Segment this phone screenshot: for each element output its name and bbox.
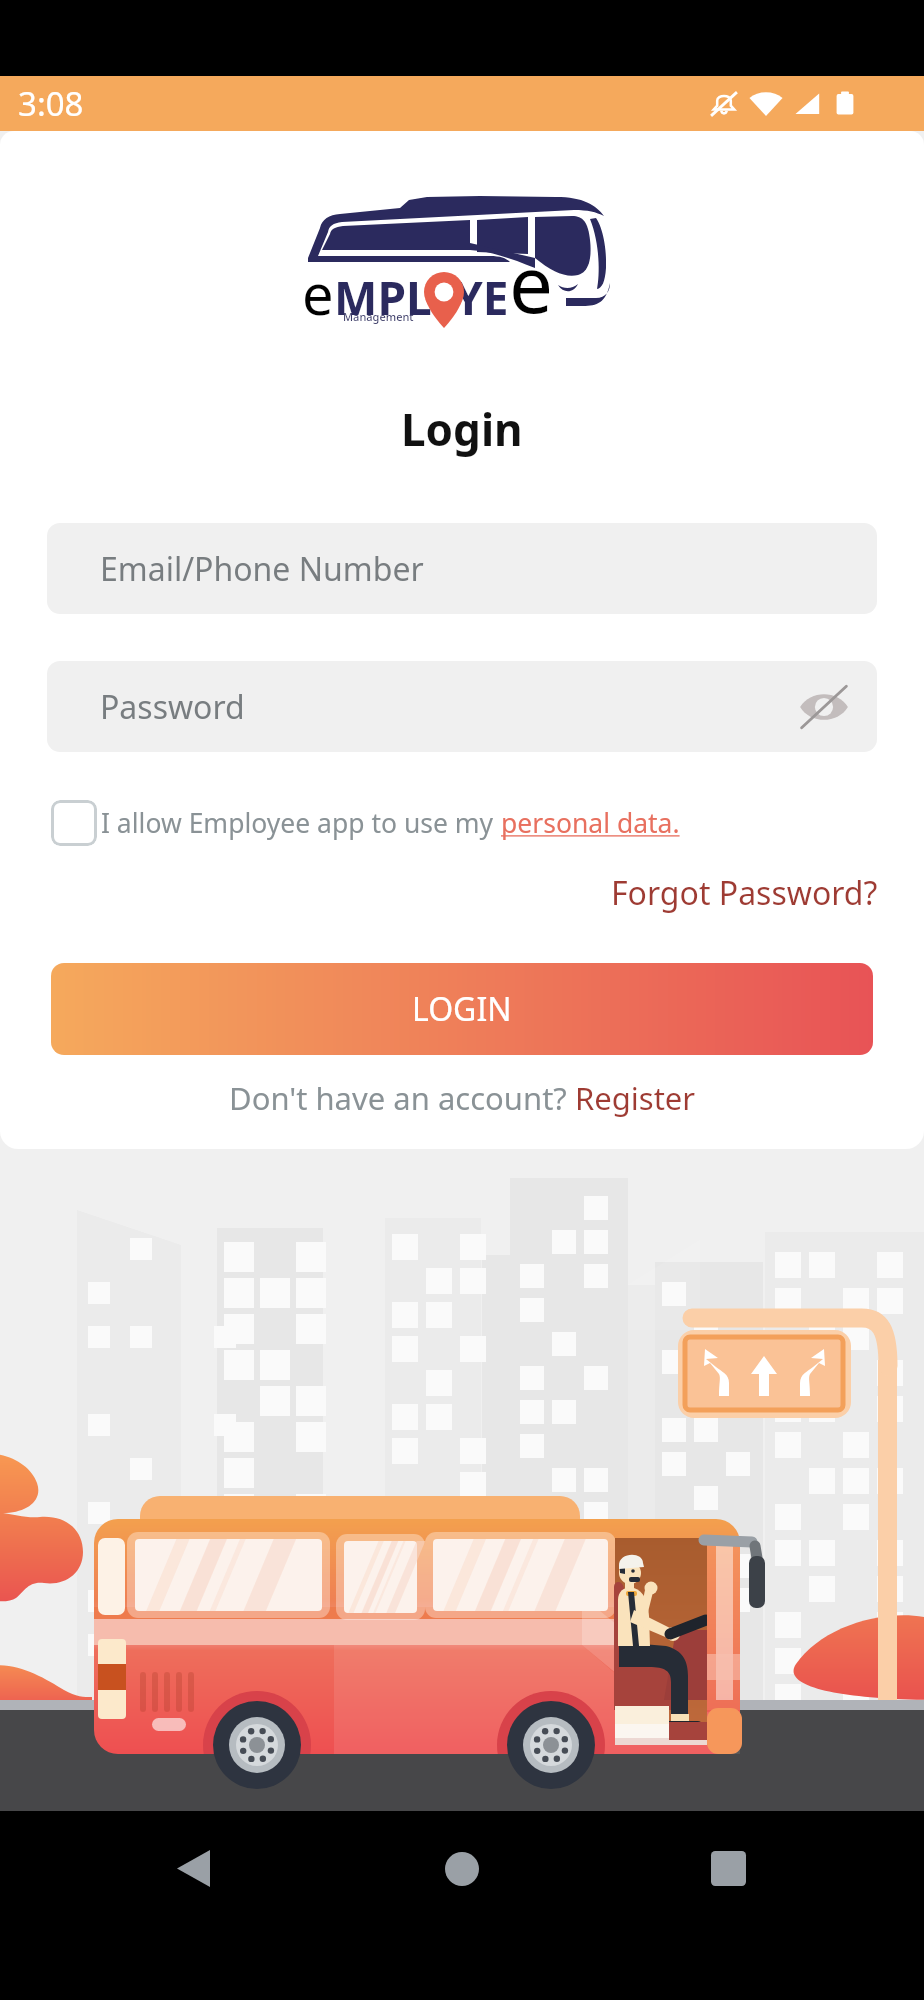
staticText: personal data.: [501, 805, 680, 841]
staticText: Login: [401, 399, 523, 459]
staticText: e: [509, 230, 553, 336]
staticText: Register: [575, 1077, 696, 1119]
staticText: e: [302, 255, 334, 331]
button[interactable]: Password: [47, 661, 877, 752]
button[interactable]: Back: [128, 1817, 258, 1920]
staticText: 3:08: [18, 81, 84, 126]
button[interactable]: Home: [397, 1817, 527, 1920]
staticText: Forgot Password?: [611, 871, 878, 915]
staticText: Email/Phone Number: [100, 547, 424, 591]
staticText: I allow Employee app to use my: [101, 805, 501, 841]
button[interactable]: personal data.: [501, 805, 680, 841]
staticText: Don't have an account?: [229, 1077, 575, 1119]
staticText: Password: [100, 685, 245, 729]
button[interactable]: Email/Phone Number: [47, 523, 877, 614]
staticText: YE: [454, 266, 509, 329]
button[interactable]: I allow Employee app to use my: [51, 797, 680, 849]
staticText: Management: [343, 309, 414, 324]
staticText: LOGIN: [412, 987, 512, 1031]
button[interactable]: Show password: [791, 674, 857, 740]
button[interactable]: LOGIN: [51, 963, 873, 1055]
button[interactable]: Register: [575, 1077, 696, 1119]
button[interactable]: Forgot Password?: [611, 871, 878, 915]
button[interactable]: Recent apps: [663, 1817, 793, 1920]
staticText: MPL: [334, 266, 432, 329]
